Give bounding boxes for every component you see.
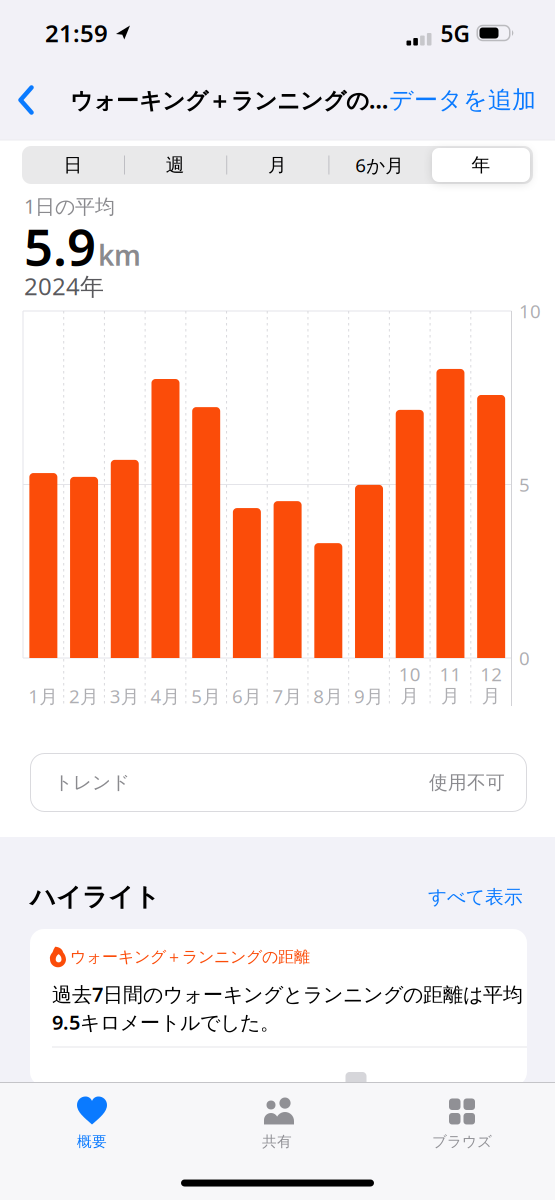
staticText: 月 [441, 684, 460, 707]
staticText: 月 [268, 153, 287, 176]
button[interactable]: 共有 [202, 1092, 352, 1154]
staticText: 21:59 [45, 17, 108, 49]
staticText: 3月 [110, 684, 140, 708]
staticText: 0 [519, 646, 530, 670]
staticText: 1月 [28, 684, 58, 708]
staticText: 日 [64, 153, 83, 176]
staticText: 過去7日間のウォーキングとランニングの距離は平均 [52, 981, 523, 1007]
staticText: 概要 [77, 1132, 107, 1150]
staticText: 5.9 [24, 212, 96, 280]
staticText: 10 [519, 299, 541, 323]
staticText: 8月 [313, 684, 343, 708]
staticText: 週 [166, 153, 185, 176]
staticText: 5月 [191, 684, 221, 708]
staticText: 9月 [354, 684, 384, 708]
staticText: 7月 [273, 684, 303, 708]
staticText: 1日の平均 [24, 193, 115, 219]
button[interactable]: データを追加 [376, 85, 536, 115]
staticText: ハイライト [30, 881, 160, 912]
staticText: 6か月 [355, 153, 404, 177]
staticText: ウォーキング＋ランニングの… [70, 85, 388, 115]
staticText: 6月 [232, 684, 262, 708]
staticText: 5G [440, 18, 469, 48]
staticText: km [98, 236, 141, 273]
button[interactable]: 週 [125, 146, 225, 184]
staticText: 使用不可 [429, 771, 505, 794]
staticText: 月 [400, 684, 419, 707]
staticText: 5 [519, 472, 530, 497]
button[interactable]: 年 [432, 148, 530, 182]
staticText: ウォーキング＋ランニングの距離 [70, 947, 310, 967]
button[interactable]: 月 [227, 146, 327, 184]
button[interactable]: トレンド [30, 753, 527, 812]
button[interactable]: 日 [23, 146, 123, 184]
staticText: 共有 [262, 1132, 292, 1150]
staticText: ブラウズ [432, 1132, 492, 1150]
staticText: 2月 [69, 684, 99, 708]
button[interactable]: 6か月 [330, 146, 430, 184]
staticText: トレンド [54, 771, 130, 794]
staticText: 10 [399, 662, 421, 686]
button[interactable]: すべて表示 [373, 885, 523, 908]
button[interactable]: 戻る [16, 85, 35, 115]
staticText: 11 [439, 662, 461, 686]
button[interactable]: ブラウズ [387, 1093, 537, 1155]
button[interactable]: ウォーキング＋ランニングの距離 [30, 929, 527, 1086]
staticText: 4月 [150, 684, 180, 708]
staticText: 9.5キロメートルでした。 [52, 1009, 280, 1035]
staticText: すべて表示 [428, 885, 523, 908]
staticText: 年 [471, 153, 490, 176]
staticText: 12 [480, 662, 502, 686]
button[interactable]: 概要 [17, 1092, 167, 1154]
staticText: 2024年 [24, 270, 104, 302]
staticText: データを追加 [389, 85, 536, 115]
staticText: 月 [482, 684, 501, 707]
